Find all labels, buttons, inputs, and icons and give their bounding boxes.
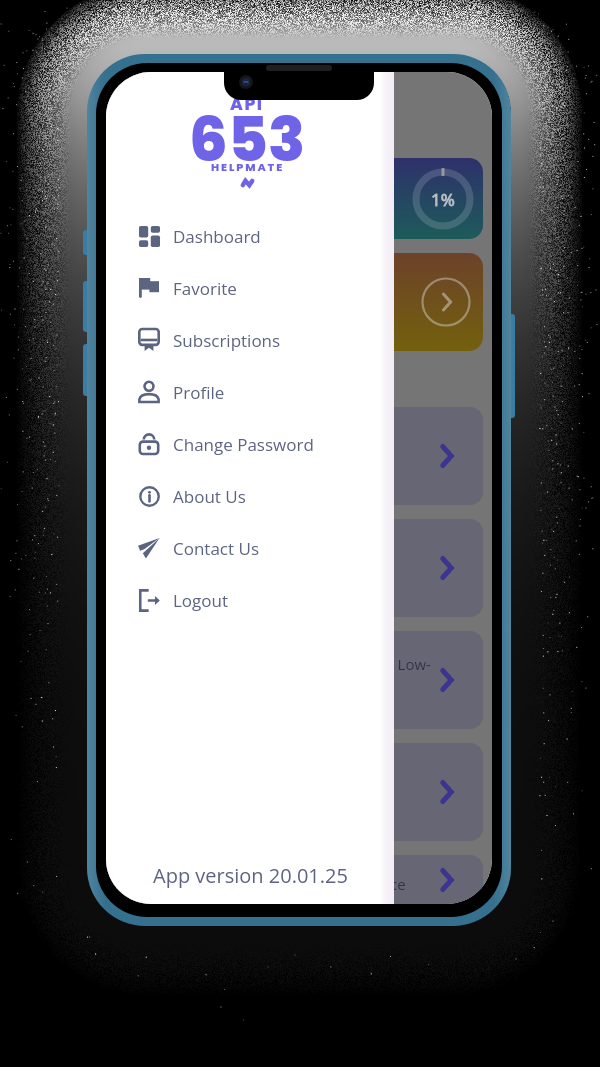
button[interactable] (120, 253, 483, 351)
staticText: App version 20.01.25 (153, 862, 348, 889)
staticText: Dashboard (173, 225, 261, 248)
staticText: About Us (173, 485, 246, 508)
button[interactable]: 1% (120, 158, 483, 239)
button[interactable]: Thickness Measurement Service (120, 855, 483, 904)
staticText: Contact Us (173, 537, 259, 560)
staticText: Change Password (173, 433, 314, 456)
staticText: Logout (173, 589, 229, 612)
button[interactable]: Dashboard (106, 210, 394, 262)
button[interactable] (120, 407, 483, 505)
staticText: Subscriptions (173, 329, 281, 352)
button[interactable]: Subscriptions (106, 314, 394, 366)
staticText: HELPMATE (211, 159, 285, 174)
staticText: Thickness Measurement Service (182, 874, 406, 894)
button[interactable]: About Us (106, 470, 394, 522)
staticText: Favorite (173, 277, 237, 300)
staticText: API (230, 92, 264, 116)
button[interactable]: Favorite (106, 262, 394, 314)
staticText: 653 (189, 97, 306, 182)
button[interactable]: Contact Us (106, 522, 394, 574)
button[interactable] (120, 743, 483, 841)
staticText: Profile (173, 381, 225, 404)
button[interactable]: Internal Corrosion Rate Low- (120, 631, 483, 729)
button[interactable]: Profile (106, 366, 394, 418)
button[interactable]: Logout (106, 574, 394, 626)
staticText: Internal Corrosion Rate Low- (231, 654, 431, 674)
staticText: 1% (431, 188, 455, 211)
button[interactable]: Change Password (106, 418, 394, 470)
button[interactable] (120, 519, 483, 617)
